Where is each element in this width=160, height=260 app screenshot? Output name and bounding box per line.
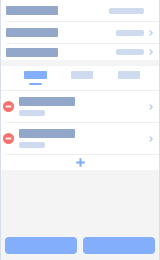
other: Add item — [75, 157, 86, 168]
button[interactable] — [58, 66, 105, 90]
button[interactable]: Add item — [0, 155, 160, 170]
button[interactable]: Remove item — [0, 91, 160, 122]
other: Remove item — [3, 101, 14, 112]
button[interactable] — [0, 22, 160, 43]
button[interactable] — [0, 44, 160, 60]
button[interactable]: Secondary action — [5, 237, 77, 254]
button[interactable]: Primary action — [83, 237, 155, 254]
other: Remove item — [3, 133, 14, 144]
button[interactable] — [105, 66, 152, 90]
button[interactable]: Remove item — [0, 123, 160, 154]
button[interactable] — [0, 0, 160, 21]
button[interactable] — [12, 66, 58, 90]
